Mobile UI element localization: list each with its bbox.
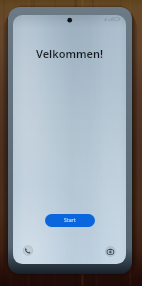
button[interactable]: Phone bbox=[22, 245, 34, 257]
staticText: Start bbox=[64, 217, 76, 224]
button[interactable]: Camera bbox=[104, 246, 116, 258]
staticText: Velkommen! bbox=[13, 46, 126, 61]
button[interactable]: Start bbox=[45, 214, 95, 227]
